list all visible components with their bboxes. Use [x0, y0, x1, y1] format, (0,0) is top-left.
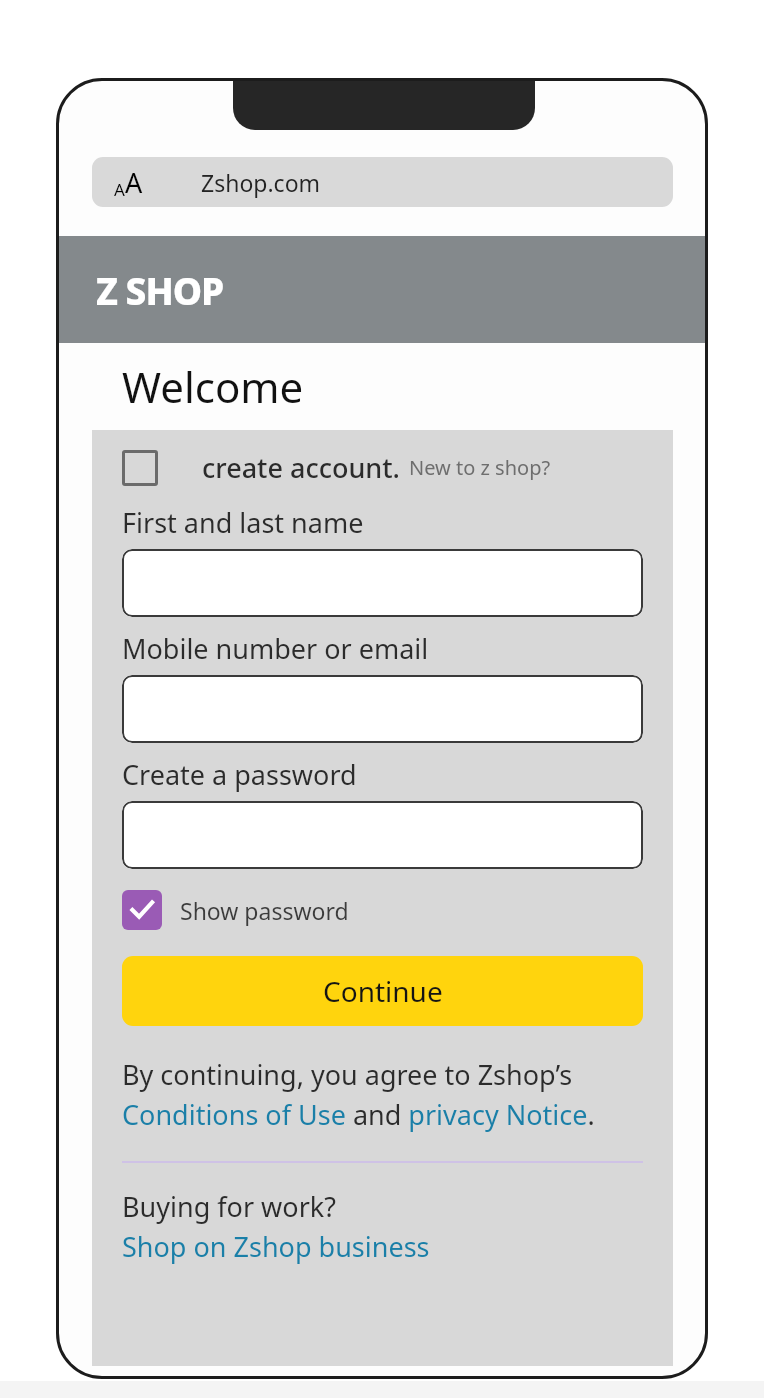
button[interactable]: Show password: [122, 890, 349, 930]
button[interactable]: [122, 549, 643, 617]
staticText: Continue: [323, 972, 443, 1010]
button[interactable]: Shop on Zshop business: [122, 1228, 430, 1265]
staticText: create account.: [202, 449, 400, 486]
button[interactable]: Conditions of Use and privacy Notice.: [122, 1096, 595, 1133]
staticText: By continuing, you agree to Zshop’s: [122, 1056, 573, 1093]
button[interactable]: Text size: [92, 157, 673, 207]
staticText: A: [125, 164, 143, 201]
button[interactable]: [122, 675, 643, 743]
button[interactable]: Z SHOP: [96, 265, 224, 315]
other: Text size: [114, 164, 143, 201]
staticText: First and last name: [122, 504, 364, 541]
staticText: Show password: [180, 895, 349, 926]
button[interactable]: [122, 801, 643, 869]
staticText: Welcome: [122, 358, 304, 415]
staticText: Create a password: [122, 756, 357, 793]
staticText: Zshop.com: [201, 167, 321, 198]
staticText: Mobile number or email: [122, 630, 429, 667]
button[interactable]: Continue: [122, 956, 643, 1026]
staticText: Buying for work?: [122, 1188, 336, 1225]
button[interactable]: create account.: [122, 449, 643, 486]
staticText: A: [114, 178, 125, 201]
staticText: New to z shop?: [409, 454, 551, 481]
